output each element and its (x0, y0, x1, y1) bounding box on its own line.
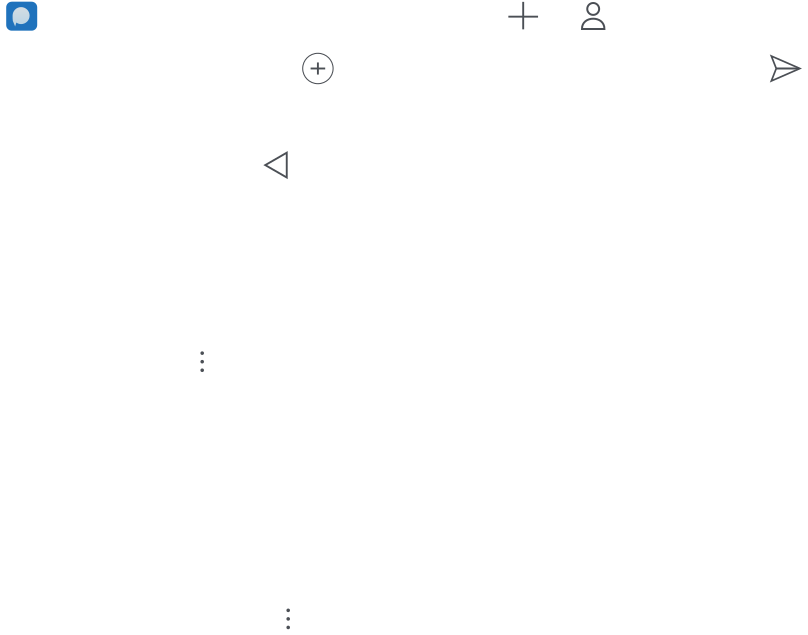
button[interactable]: More Options (189, 340, 215, 383)
button[interactable]: More Options (275, 597, 301, 635)
button[interactable]: Add Attachment (303, 53, 333, 84)
button[interactable]: New Message (508, 1, 538, 30)
button[interactable]: Contacts (581, 2, 605, 30)
button[interactable]: Send (770, 55, 801, 82)
button[interactable]: Messages (6, 2, 37, 31)
button[interactable]: Back (265, 153, 287, 177)
